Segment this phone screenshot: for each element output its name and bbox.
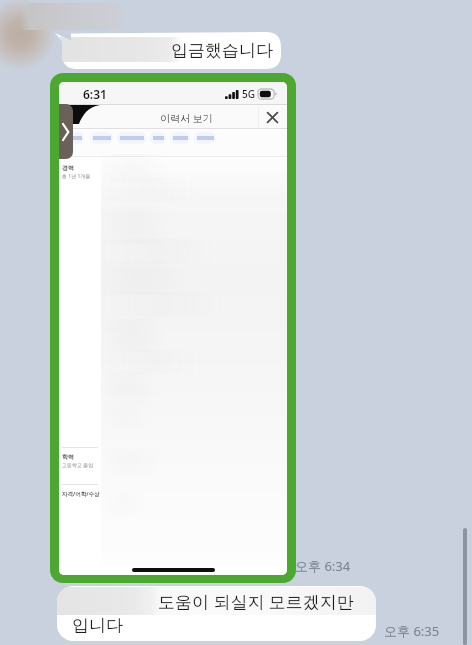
- staticText: 도움이 되실지 모르겠지만: [158, 590, 354, 613]
- staticText: 입금했습니다: [171, 40, 273, 61]
- button[interactable]: [170, 132, 190, 144]
- staticText: 이력서 보기: [160, 111, 213, 125]
- staticText: 오후 6:35: [384, 622, 440, 640]
- staticText: 총 1년 1개월: [62, 173, 91, 180]
- button[interactable]: Open navigation drawer: [59, 104, 73, 159]
- button[interactable]: 도움이 되실지 모르겠지만: [57, 586, 376, 641]
- button[interactable]: [194, 132, 216, 144]
- staticText: 입니다: [72, 615, 123, 636]
- button[interactable]: [117, 132, 146, 144]
- button[interactable]: [150, 132, 166, 144]
- staticText: 학력: [62, 453, 74, 461]
- button[interactable]: [70, 132, 84, 144]
- button[interactable]: [90, 132, 113, 144]
- staticText: 오후 6:34: [295, 557, 351, 575]
- staticText: 6:31: [83, 86, 107, 102]
- button[interactable]: 6:31: [50, 73, 296, 583]
- button[interactable]: Close: [262, 107, 282, 127]
- staticText: 5G: [242, 87, 255, 101]
- button[interactable]: 입금했습니다: [55, 32, 281, 69]
- staticText: 자격/어학/수상: [62, 490, 100, 498]
- staticText: 고등학교 졸업: [62, 462, 94, 469]
- staticText: 경력: [62, 164, 74, 172]
